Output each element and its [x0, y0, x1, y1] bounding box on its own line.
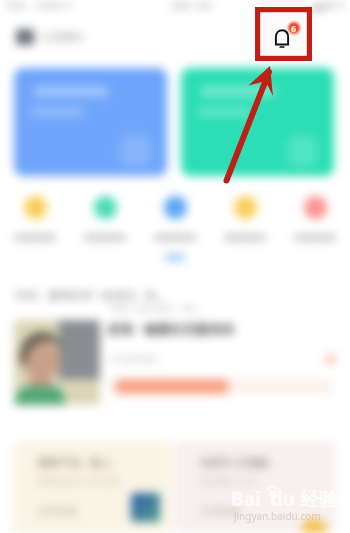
button[interactable]: Notifications [274, 29, 292, 49]
button[interactable]: 信用卡·分期购 [175, 441, 336, 533]
staticText: 10:36 [5, 0, 26, 11]
staticText: jingyan.baidu.com [234, 509, 321, 523]
staticText: Bai du 经验 [231, 486, 338, 512]
staticText: 推荐 · 生活小贴士 · 热门 [112, 302, 199, 313]
button[interactable] [14, 68, 167, 176]
staticText: 中国移动 4G [34, 1, 73, 11]
staticText: 信用卡·分期购 [200, 455, 270, 470]
staticText: 立即查看 [37, 505, 77, 518]
staticText: 发现 · 健康生活新风尚 [107, 320, 235, 338]
button[interactable] [70, 196, 140, 241]
staticText: 立即查看 [200, 505, 240, 518]
button[interactable]: Close [326, 355, 335, 364]
staticText: 活动：邀请好友一起来玩 · 优… [15, 287, 165, 302]
staticText: 理财产品 · 新人 [37, 455, 112, 470]
button[interactable]: 活动：邀请好友一起来玩 · 优… [0, 286, 350, 371]
staticText: 江苏银行 [41, 30, 85, 44]
button[interactable]: Profile [16, 29, 34, 45]
button[interactable] [140, 196, 210, 241]
button[interactable]: 理财产品 · 新人 [12, 441, 173, 533]
staticText: ▂▄ ● 97% [310, 1, 345, 11]
button[interactable] [181, 68, 334, 176]
staticText: 6 [291, 22, 297, 34]
staticText: 流量宝 · 微信 [171, 1, 212, 11]
button[interactable] [0, 196, 70, 241]
button[interactable] [280, 196, 350, 241]
button[interactable] [210, 196, 280, 241]
